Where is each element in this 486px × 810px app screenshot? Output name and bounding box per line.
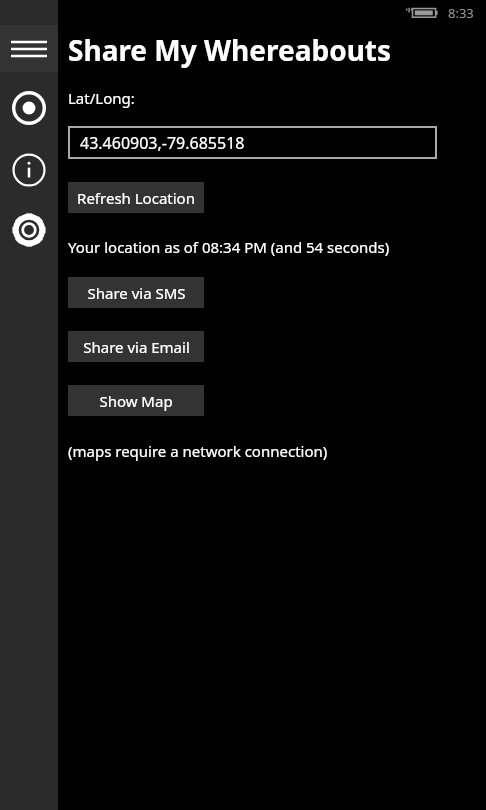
- staticText: Share via SMS: [87, 283, 186, 303]
- button[interactable]: Menu: [0, 25, 58, 72]
- staticText: Lat/Long:: [68, 88, 135, 108]
- staticText: (maps require a network connection): [68, 441, 328, 461]
- staticText: Share via Email: [83, 337, 190, 357]
- button[interactable]: Locate: [0, 82, 58, 134]
- staticText: Show Map: [99, 391, 173, 411]
- button[interactable]: About: [0, 144, 58, 196]
- button[interactable]: 43.460903,-79.685518: [68, 126, 437, 159]
- button[interactable]: Share via Email: [68, 331, 204, 362]
- staticText: 43.460903,-79.685518: [80, 132, 245, 154]
- staticText: Share My Whereabouts: [68, 31, 392, 69]
- staticText: Your location as of 08:34 PM (and 54 sec…: [68, 237, 390, 257]
- button[interactable]: Share via SMS: [68, 277, 204, 308]
- button[interactable]: Refresh Location: [68, 182, 204, 213]
- staticText: 8:33: [448, 4, 474, 22]
- button[interactable]: Settings: [0, 204, 58, 256]
- button[interactable]: Show Map: [68, 385, 204, 416]
- staticText: Refresh Location: [77, 188, 195, 208]
